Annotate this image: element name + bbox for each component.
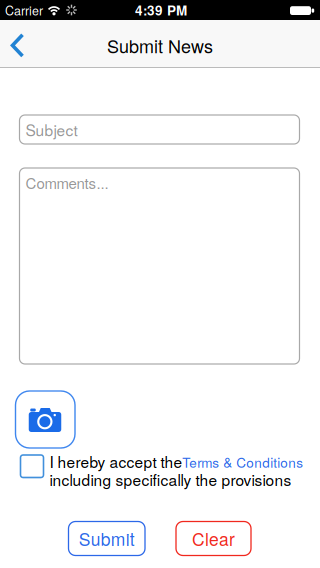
- button[interactable]: Clear: [176, 521, 251, 555]
- staticText: Subject: [25, 118, 77, 141]
- staticText: Submit News: [107, 33, 213, 58]
- staticText: Carrier: [5, 1, 43, 19]
- button[interactable]: Add photo: [15, 391, 75, 448]
- staticText: including specifically the provisions: [49, 468, 291, 490]
- button[interactable]: Terms & Conditions: [182, 452, 303, 471]
- staticText: I hereby accept the: [49, 450, 182, 472]
- button[interactable]: Back: [1, 25, 35, 65]
- staticText: Terms & Conditions: [182, 452, 303, 471]
- staticText: Clear: [192, 526, 235, 551]
- staticText: 4:39 PM: [135, 0, 187, 20]
- button[interactable]: Submit: [68, 521, 145, 555]
- staticText: Submit: [79, 526, 135, 551]
- button[interactable]: I hereby accept the Terms & Conditions: [20, 455, 43, 477]
- staticText: Comments...: [25, 172, 108, 193]
